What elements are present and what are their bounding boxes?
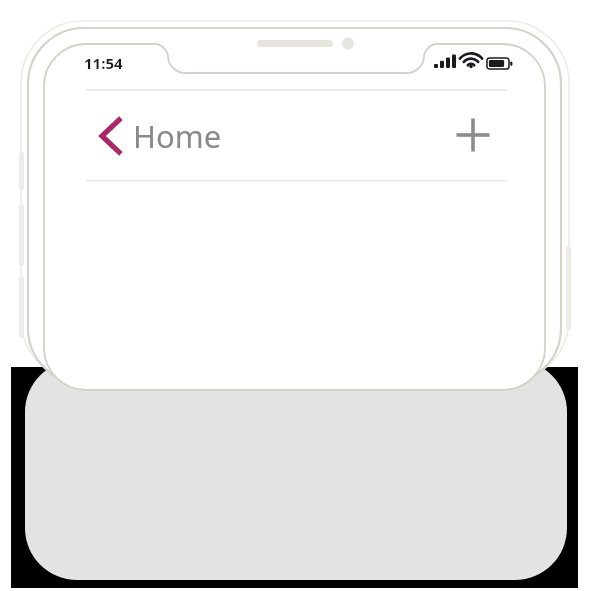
button[interactable]: Back <box>92 110 144 162</box>
button[interactable]: Add <box>449 111 497 159</box>
